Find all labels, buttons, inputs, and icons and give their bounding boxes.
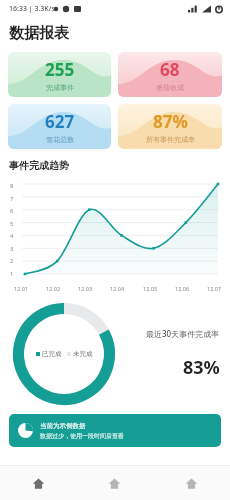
staticText: 68 — [160, 58, 180, 81]
staticText: 事件完成趋势 — [9, 159, 69, 172]
staticText: 12.04 — [110, 285, 125, 292]
staticText: 5 — [10, 220, 14, 228]
button[interactable]: Sample data — [9, 414, 221, 447]
staticText: 12.01 — [14, 285, 29, 292]
staticText: 12.05 — [143, 285, 158, 292]
staticText: 2 — [10, 257, 14, 265]
staticText: 当前为示例数据 — [40, 422, 86, 430]
staticText: 已完成 — [42, 350, 62, 358]
staticText: 8 — [10, 182, 14, 190]
staticText: 完成事件 — [46, 83, 74, 92]
staticText: 番茄收成 — [156, 83, 184, 92]
staticText: 最近30天事件完成率 — [146, 328, 220, 339]
staticText: 16:33 | 3.3K/s — [9, 4, 55, 14]
button[interactable]: 我的 — [153, 466, 230, 500]
staticText: 12.06 — [175, 285, 190, 292]
staticText: 12.03 — [78, 285, 93, 292]
staticText: 雪花总数 — [46, 135, 74, 144]
button[interactable]: 255 — [8, 52, 111, 97]
staticText: 1 — [10, 270, 14, 278]
staticText: 6 — [10, 207, 14, 215]
button[interactable]: 统计 — [76, 466, 153, 500]
staticText: 未完成 — [73, 350, 93, 358]
staticText: 83% — [183, 355, 220, 380]
staticText: 627 — [45, 110, 75, 133]
staticText: 4 — [10, 232, 14, 240]
button[interactable]: 627 — [8, 104, 111, 149]
button[interactable]: 首页 — [0, 466, 76, 500]
staticText: 所有事件完成率 — [146, 135, 195, 144]
staticText: 12.07 — [207, 285, 222, 292]
staticText: 数据过少，使用一段时间后查看 — [40, 432, 124, 440]
staticText: 3 — [10, 245, 14, 253]
staticText: 87% — [153, 110, 188, 133]
staticText: 数据报表 — [9, 24, 69, 43]
button[interactable]: 87% — [118, 104, 222, 149]
button[interactable]: 68 — [118, 52, 222, 97]
other: Sample data — [18, 423, 33, 438]
staticText: 255 — [45, 58, 75, 81]
staticText: 7 — [10, 195, 14, 203]
staticText: 12.02 — [46, 285, 61, 292]
